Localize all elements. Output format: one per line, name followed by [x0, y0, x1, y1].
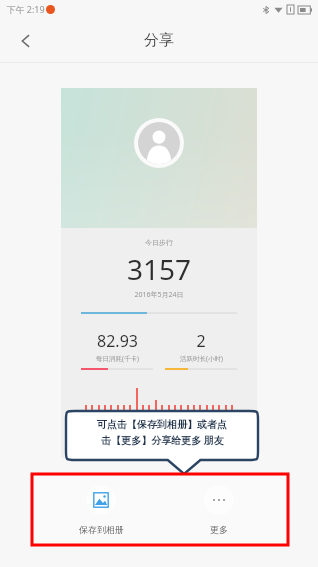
button[interactable]: 保存到相册 — [42, 474, 160, 545]
staticText: 击【更多】分享给更多 朋友 — [101, 433, 224, 447]
staticText: 今日步行 — [61, 238, 257, 247]
staticText: 2016年5月24日 — [61, 290, 257, 300]
staticText: 更多 — [210, 524, 228, 535]
staticText: 下午 2:19 — [6, 3, 45, 15]
staticText: 保存到相册 — [79, 524, 124, 535]
staticText: 82.93 — [97, 330, 138, 352]
button[interactable]: 更多 — [160, 474, 278, 545]
staticText: 每日消耗(千卡) — [96, 354, 139, 363]
button[interactable]: Back — [6, 21, 46, 61]
staticText: 2 — [196, 330, 206, 352]
staticText: 可点击【保存到相册】或者点 — [97, 418, 227, 431]
staticText: 3157 — [61, 250, 257, 288]
staticText: 活跃时长(小时) — [180, 354, 223, 363]
staticText: 分享 — [144, 31, 174, 50]
